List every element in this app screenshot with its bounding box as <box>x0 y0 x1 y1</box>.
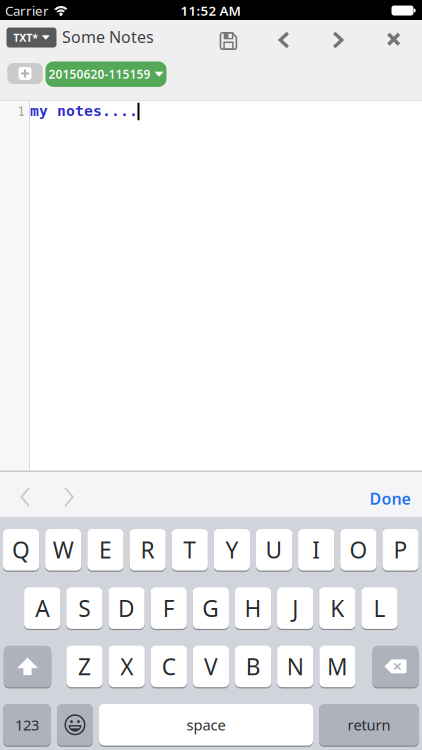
button[interactable]: space <box>99 704 313 745</box>
staticText: Some Notes <box>62 26 154 47</box>
button[interactable]: O <box>340 529 376 570</box>
button[interactable]: Next field <box>64 487 74 507</box>
staticText: N <box>287 651 304 681</box>
staticText: J <box>292 593 298 623</box>
button[interactable]: X <box>109 646 145 687</box>
button[interactable]: V <box>193 646 229 687</box>
staticText: T <box>183 535 196 565</box>
staticText: S <box>78 593 90 623</box>
staticText: H <box>244 593 261 623</box>
staticText: 1 <box>17 105 24 118</box>
staticText: Z <box>78 651 91 681</box>
button[interactable]: Y <box>214 529 250 570</box>
staticText: Y <box>225 535 238 565</box>
staticText: V <box>204 651 218 681</box>
button[interactable]: G <box>193 587 229 629</box>
staticText: Done <box>369 488 410 509</box>
staticText: 123 <box>15 715 39 735</box>
staticText: Q <box>12 535 30 565</box>
staticText: K <box>330 593 344 623</box>
button[interactable]: J <box>277 587 313 629</box>
button[interactable]: Previous field <box>20 487 30 507</box>
button[interactable]: L <box>361 587 398 629</box>
staticText: X <box>120 651 133 681</box>
button[interactable]: Previous <box>278 31 289 49</box>
button[interactable]: R <box>129 529 166 570</box>
staticText: E <box>99 535 112 565</box>
button[interactable]: P <box>382 529 419 570</box>
button[interactable]: T <box>172 529 208 570</box>
button[interactable]: A <box>24 587 60 629</box>
staticText: C <box>162 651 176 681</box>
staticText: B <box>246 651 261 681</box>
staticText: return <box>347 715 390 735</box>
staticText: space <box>186 715 225 735</box>
button[interactable]: Save <box>220 32 237 50</box>
staticText: my notes.... <box>30 103 138 119</box>
button[interactable]: F <box>151 587 187 629</box>
button[interactable]: Done <box>369 488 410 509</box>
button[interactable]: U <box>256 529 292 570</box>
staticText: W <box>53 535 74 565</box>
button[interactable]: Delete <box>372 646 418 687</box>
staticText: L <box>373 593 385 623</box>
button[interactable]: Shift <box>4 646 51 687</box>
button[interactable]: M <box>319 646 356 687</box>
staticText: I <box>312 535 320 565</box>
staticText: G <box>202 593 219 623</box>
button[interactable]: Z <box>66 646 103 687</box>
button[interactable]: TXT* <box>6 27 56 47</box>
staticText: 11:52 AM <box>180 2 240 19</box>
button[interactable]: H <box>235 587 271 629</box>
button[interactable]: Add <box>7 63 43 84</box>
staticText: F <box>163 593 175 623</box>
staticText: 20150620-115159 <box>48 66 150 82</box>
button[interactable]: S <box>66 587 102 629</box>
button[interactable]: K <box>319 587 355 629</box>
staticText: Carrier <box>5 2 49 19</box>
button[interactable]: Close <box>387 33 400 46</box>
staticText: TXT* <box>13 30 38 45</box>
button[interactable]: 123 <box>3 704 51 745</box>
button[interactable]: N <box>277 646 313 687</box>
button[interactable]: W <box>45 529 81 570</box>
staticText: R <box>141 535 155 565</box>
button[interactable]: return <box>319 704 419 745</box>
staticText: D <box>118 593 135 623</box>
button[interactable]: Emoji <box>57 704 93 745</box>
button[interactable]: B <box>235 646 271 687</box>
button[interactable]: E <box>87 529 123 570</box>
button[interactable]: 20150620-115159 <box>45 61 166 87</box>
staticText: O <box>349 535 367 565</box>
staticText: U <box>266 535 283 565</box>
button[interactable]: C <box>151 646 187 687</box>
staticText: M <box>327 651 348 681</box>
staticText: A <box>35 593 49 623</box>
button[interactable]: I <box>298 529 334 570</box>
staticText: P <box>393 535 407 565</box>
button[interactable]: Q <box>3 529 39 570</box>
button[interactable]: Next <box>332 31 343 49</box>
button[interactable]: D <box>108 587 145 629</box>
